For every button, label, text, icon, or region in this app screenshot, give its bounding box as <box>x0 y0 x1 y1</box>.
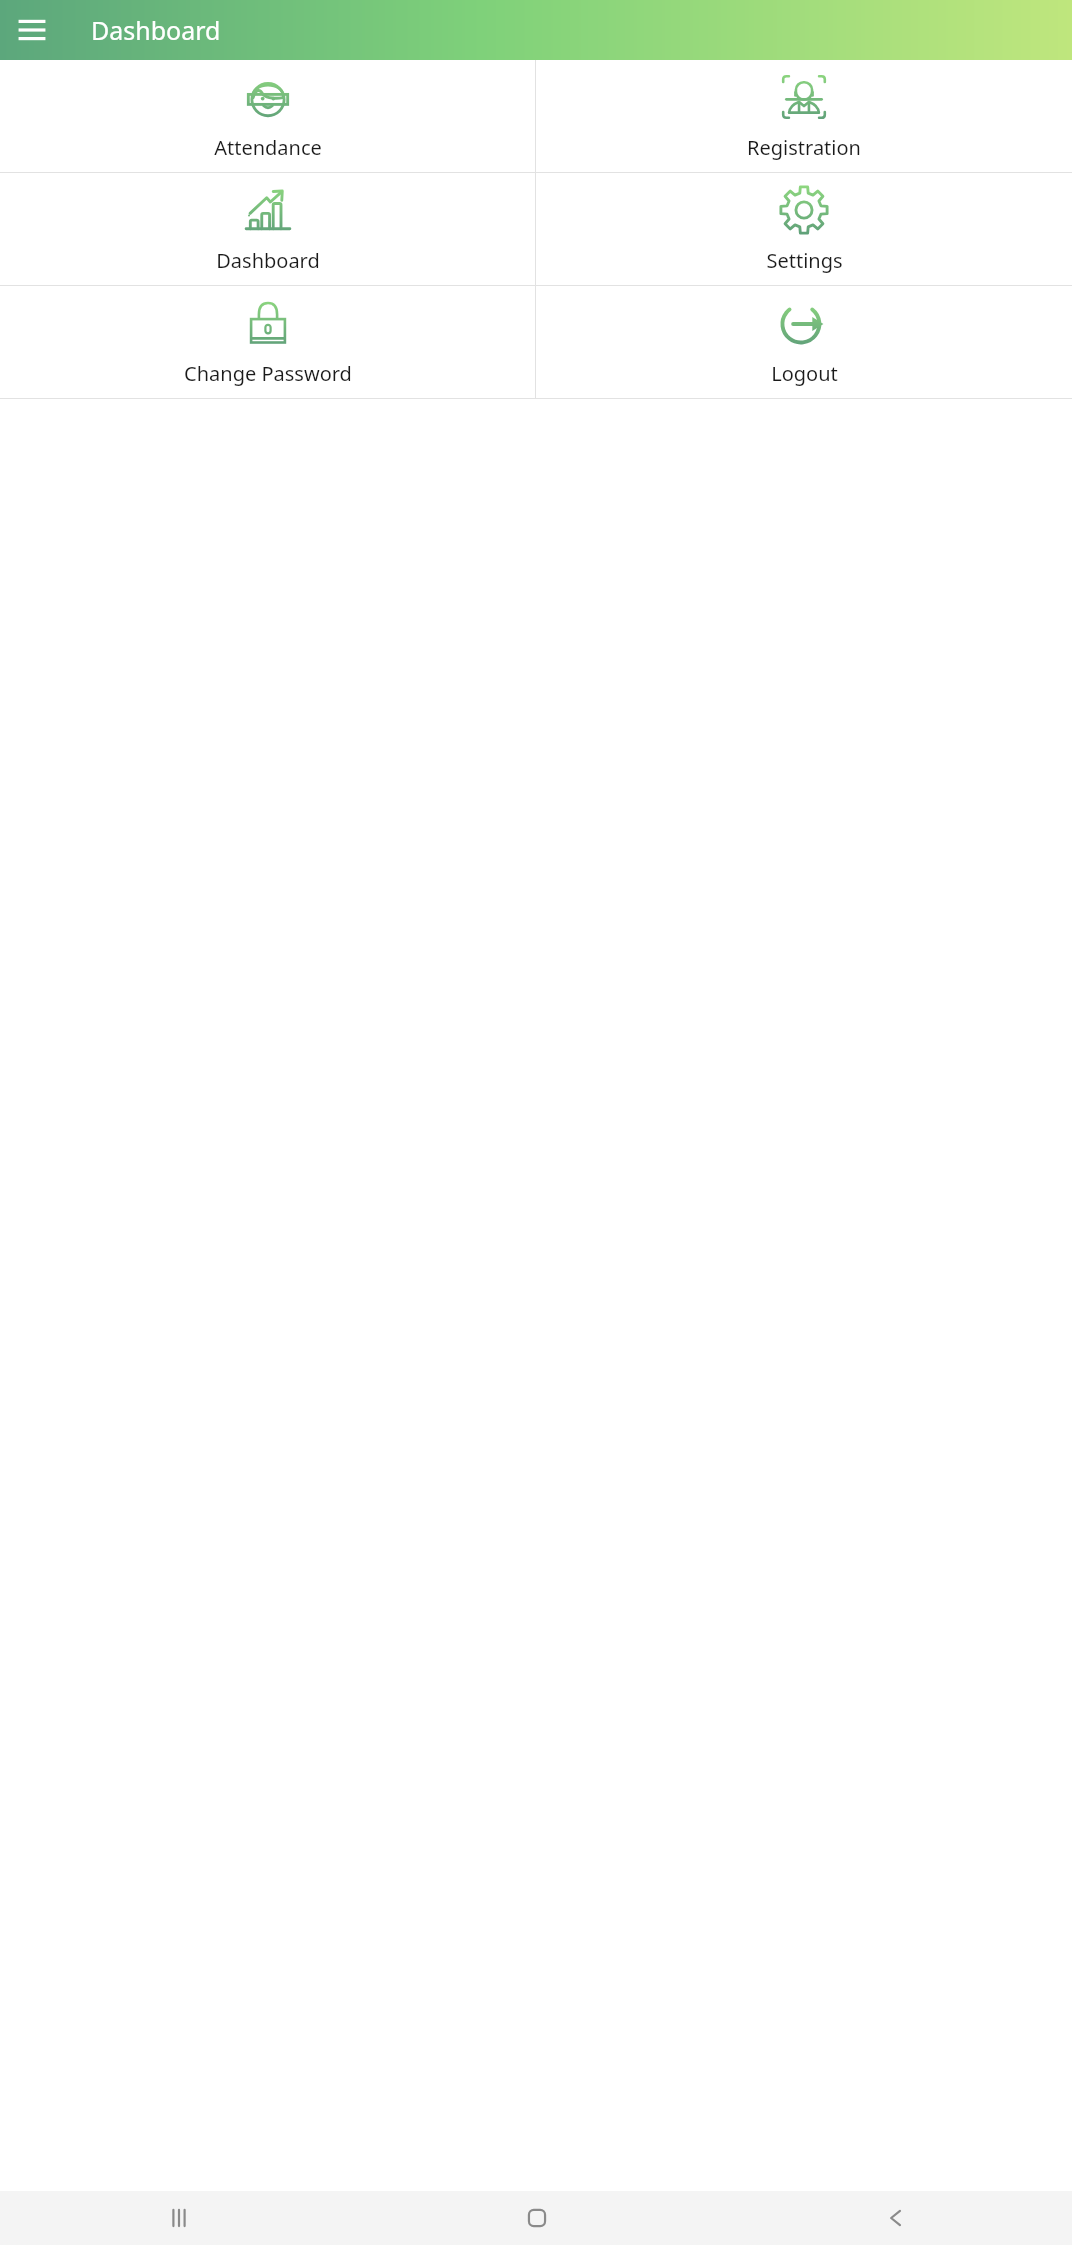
button[interactable]: Dashboard <box>0 173 535 285</box>
staticText: Registration <box>747 134 861 161</box>
button[interactable]: Recent apps <box>0 2191 358 2245</box>
button[interactable]: Attendance <box>0 60 535 172</box>
button[interactable]: Change Password <box>0 286 535 398</box>
button[interactable]: Home <box>358 2191 715 2245</box>
button[interactable]: Registration <box>536 60 1072 172</box>
button[interactable]: Open navigation menu <box>8 6 56 54</box>
staticText: Settings <box>766 247 843 274</box>
button[interactable]: Back <box>715 2191 1072 2245</box>
staticText: Dashboard <box>216 247 320 274</box>
button[interactable]: Settings <box>536 173 1072 285</box>
staticText: Logout <box>771 360 838 387</box>
staticText: Dashboard <box>91 13 221 47</box>
staticText: Change Password <box>184 360 352 387</box>
button[interactable]: Logout <box>536 286 1072 398</box>
staticText: Attendance <box>214 134 322 161</box>
